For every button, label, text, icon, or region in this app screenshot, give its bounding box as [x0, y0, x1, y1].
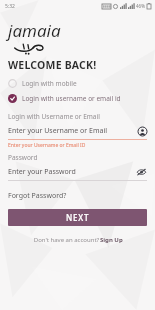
- button[interactable]: Login with mobile: [0, 78, 155, 89]
- button[interactable]: Forgot Password?: [0, 190, 67, 202]
- staticText: Enter your Username or Email ID: [8, 142, 86, 149]
- button[interactable]: Show password: [136, 168, 147, 176]
- staticText: 5:32: [5, 3, 15, 10]
- staticText: Password: [8, 153, 38, 162]
- staticText: Don't have an account?: [33, 236, 100, 244]
- staticText: WELCOME BACK!: [8, 58, 97, 72]
- staticText: Login with mobile: [22, 79, 77, 88]
- button[interactable]: Enter your Username or Email: [0, 126, 155, 136]
- button[interactable]: Login with username or email id: [0, 93, 155, 104]
- other: Account: [138, 127, 147, 136]
- staticText: Enter your Username or Email: [8, 126, 138, 136]
- button[interactable]: Don't have an account?: [0, 235, 155, 245]
- staticText: jamaia: [8, 19, 61, 42]
- staticText: NEXT: [66, 212, 90, 223]
- button[interactable]: Enter your Password: [0, 167, 155, 177]
- staticText: Login with Username or Email: [8, 112, 100, 121]
- staticText: Login with username or email id: [22, 94, 121, 103]
- staticText: Sign Up: [100, 236, 123, 244]
- staticText: 46%: [136, 3, 145, 9]
- staticText: Forgot Password?: [8, 191, 67, 201]
- staticText: Enter your Password: [8, 167, 136, 177]
- button[interactable]: NEXT: [8, 209, 147, 226]
